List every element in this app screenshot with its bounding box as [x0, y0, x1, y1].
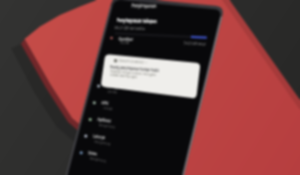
button[interactable]: APK: [86, 97, 186, 112]
button[interactable]: Lainnya: [78, 130, 178, 145]
button[interactable]: Ruang penyimpanan hampir habis: [102, 55, 200, 98]
button[interactable]: Sistem: [73, 146, 173, 161]
button[interactable]: Aplikasi: [82, 113, 182, 128]
